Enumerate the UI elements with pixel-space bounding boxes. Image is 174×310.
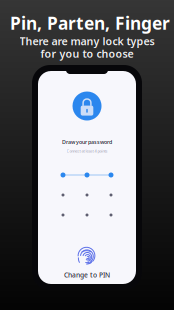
staticText: There are many lock types: [19, 34, 154, 48]
button[interactable]: Change to PIN: [64, 243, 110, 279]
staticText: Pin, Parten, Finger: [10, 11, 170, 34]
staticText: for you to choose: [40, 46, 133, 61]
staticText: Draw your password: [62, 138, 112, 146]
staticText: Connect at least 4 points: [66, 148, 107, 154]
staticText: Change to PIN: [64, 271, 110, 279]
